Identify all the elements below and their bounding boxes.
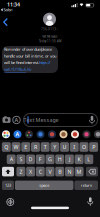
button[interactable]: Recent apps [2, 130, 10, 138]
button[interactable]: Camera [2, 115, 11, 125]
staticText: Text Message [42, 35, 58, 38]
staticText: handle your bill in time, or you [4, 53, 56, 58]
button[interactable]: C [36, 167, 45, 176]
button[interactable]: Open link [4, 66, 31, 72]
staticText: L [87, 156, 90, 163]
staticText: 756-0113 [41, 27, 56, 31]
staticText: I [73, 143, 75, 151]
staticText: W [13, 143, 18, 151]
button[interactable]: App [71, 130, 79, 138]
staticText: P [92, 143, 95, 151]
button[interactable]: Memoji Stickers [59, 130, 67, 138]
staticText: 123 [5, 183, 11, 188]
button[interactable]: Photos [25, 130, 33, 138]
button[interactable]: Y [50, 142, 59, 152]
button[interactable]: Z [16, 167, 25, 176]
button[interactable]: space [15, 181, 73, 190]
staticText: Today 11:30 AM [39, 39, 61, 43]
button[interactable]: App [94, 130, 100, 138]
staticText: V [48, 168, 51, 175]
button[interactable]: W [12, 142, 20, 152]
button[interactable]: M [75, 167, 83, 176]
staticText: 11:34 [7, 1, 20, 8]
button[interactable]: I [70, 142, 79, 152]
button[interactable]: E [21, 142, 30, 152]
staticText: U [62, 143, 66, 151]
button[interactable]: Shift [2, 167, 14, 176]
button[interactable]: App [82, 130, 90, 138]
button[interactable]: R [31, 142, 40, 152]
button[interactable]: 123 [2, 181, 14, 190]
button[interactable]: T [41, 142, 50, 152]
button[interactable]: J [65, 154, 74, 164]
button[interactable]: U [60, 142, 69, 152]
staticText: K [78, 156, 81, 163]
button[interactable]: P [89, 142, 98, 152]
button[interactable]: V [45, 167, 54, 176]
button[interactable]: Message field [23, 113, 97, 126]
button[interactable]: B [55, 167, 64, 176]
staticText: › [57, 27, 58, 31]
button[interactable]: G [45, 154, 54, 164]
button[interactable]: S [16, 154, 25, 164]
staticText: Safari [3, 7, 13, 12]
staticText: B [58, 168, 61, 175]
staticText: A [15, 131, 19, 138]
button[interactable]: Dictation [87, 197, 94, 206]
button[interactable]: A [7, 154, 16, 164]
button[interactable]: N [65, 167, 74, 176]
button[interactable]: F [36, 154, 45, 164]
button[interactable]: Q [2, 142, 11, 152]
staticText: D [29, 156, 33, 163]
button[interactable]: App [48, 130, 56, 138]
button[interactable]: H [55, 154, 64, 164]
button[interactable]: App Store [13, 130, 21, 138]
staticText: Text Message [23, 116, 58, 124]
staticText: Reminder of overdue/please [4, 47, 52, 52]
button[interactable]: K [75, 154, 83, 164]
button[interactable]: Back [3, 18, 8, 26]
staticText: X [29, 168, 32, 175]
button[interactable]: iMessage apps [13, 116, 20, 124]
button[interactable]: O [79, 142, 88, 152]
staticText: A [14, 116, 18, 124]
staticText: https:// [39, 60, 50, 65]
staticText: Y [53, 143, 56, 151]
button[interactable]: Contact details [41, 13, 58, 31]
button[interactable]: D [26, 154, 35, 164]
button[interactable]: X [26, 167, 35, 176]
staticText: F [39, 156, 42, 163]
staticText: E [24, 143, 27, 151]
staticText: N [67, 168, 71, 175]
staticText: C [39, 168, 42, 175]
button[interactable]: Next keyboard [7, 198, 14, 205]
staticText: G [48, 156, 52, 163]
staticText: A [10, 156, 13, 163]
staticText: S [19, 156, 22, 163]
button[interactable]: Delete [86, 167, 98, 176]
staticText: Z [19, 168, 22, 175]
staticText: J [69, 156, 70, 163]
staticText: return [81, 183, 92, 188]
staticText: will be fined interest. [4, 60, 39, 65]
button[interactable]: return [74, 181, 98, 190]
staticText: oah.1U19b+6.l/o [4, 66, 31, 72]
staticText: space [39, 183, 49, 188]
staticText: T [44, 143, 47, 151]
staticText: H [58, 156, 62, 163]
staticText: M [77, 168, 82, 175]
staticText: O [82, 143, 86, 151]
staticText: R [34, 143, 37, 151]
button[interactable]: App [36, 130, 44, 138]
staticText: Q [4, 143, 8, 151]
button[interactable]: L [84, 154, 93, 164]
